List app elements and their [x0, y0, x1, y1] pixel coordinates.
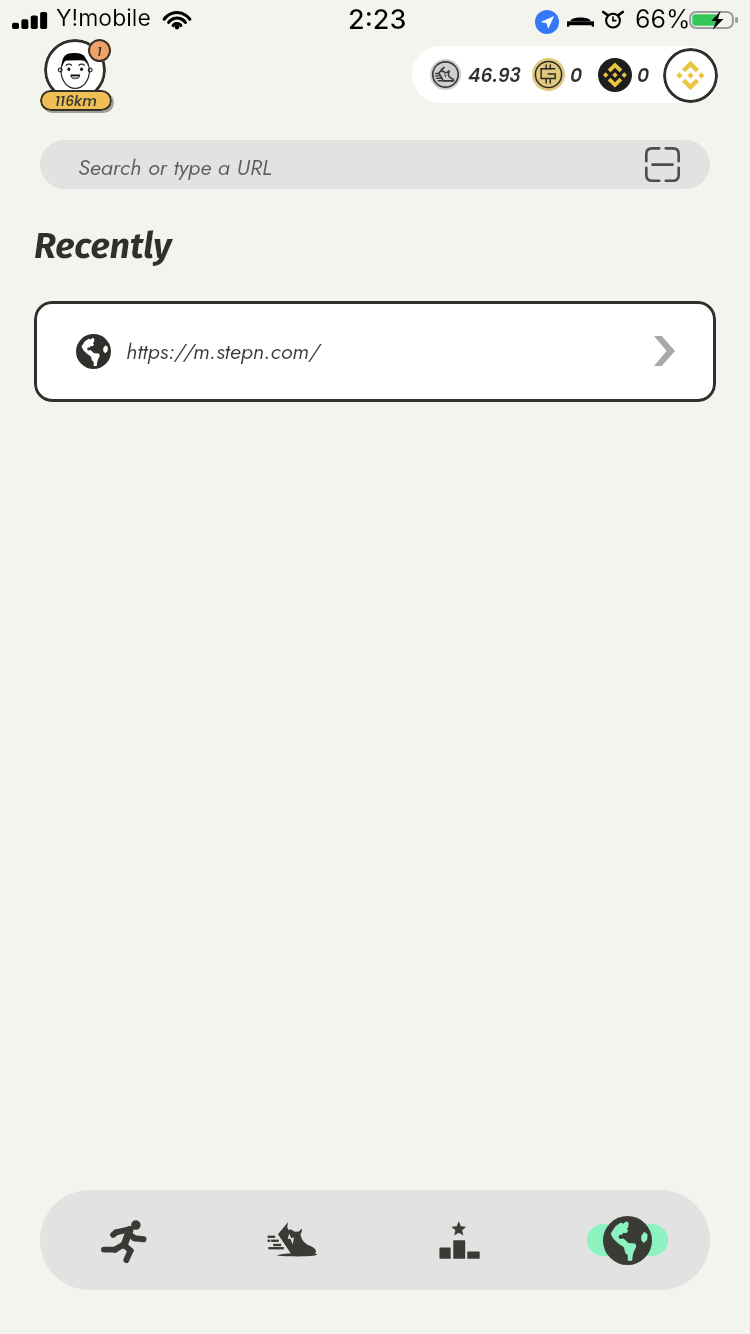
button[interactable]: Sneakers	[208, 1190, 376, 1290]
button[interactable]: Browser	[543, 1190, 711, 1290]
staticText: Y!mobile	[56, 4, 151, 32]
staticText: 1	[97, 42, 102, 60]
button[interactable]: Search or type a URL	[40, 140, 710, 189]
staticText: Search or type a URL	[78, 151, 272, 183]
other: Scan QR code	[630, 146, 690, 184]
staticText: 46.93	[468, 62, 521, 89]
button[interactable]: Leaderboard	[375, 1190, 543, 1290]
button[interactable]: Profile	[38, 37, 116, 115]
staticText: 66%	[635, 4, 691, 34]
staticText: 0	[637, 62, 650, 89]
button[interactable]: Run	[40, 1190, 208, 1290]
staticText: Recently	[34, 224, 172, 267]
staticText: 116km	[55, 91, 97, 111]
staticText: https://m.stepn.com/	[126, 335, 320, 367]
button[interactable]: Binance wallet	[663, 48, 718, 103]
button[interactable]: https://m.stepn.com/	[34, 301, 716, 402]
staticText: 2:23	[348, 3, 407, 36]
staticText: 0	[570, 62, 583, 89]
